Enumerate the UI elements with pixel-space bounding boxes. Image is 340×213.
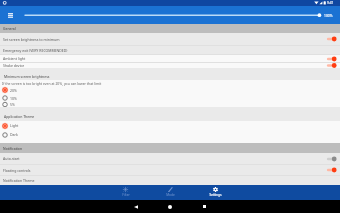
button[interactable]: Notification Theme [0,176,340,185]
button[interactable]: Mode [148,185,193,200]
staticText: If the screen is too bright even at 20%,… [2,81,102,86]
button[interactable]: Floating controls [0,165,340,175]
staticText: Shake device [3,63,25,68]
staticText: Filter [122,193,130,197]
staticText: Light [10,123,19,128]
button[interactable]: Back [119,200,153,213]
button[interactable]: Dark [0,130,340,139]
button[interactable]: 20% [0,86,340,94]
button[interactable]: Shake device [0,63,340,68]
staticText: Floating controls [3,168,31,173]
button[interactable]: 5% [0,102,340,107]
button[interactable]: Open navigation menu [4,9,16,21]
staticText: 9:41 [327,1,334,5]
button[interactable]: Recent apps [187,200,221,213]
staticText: Emergency exit (VERY RECOMMENDED) [3,48,68,53]
staticText: Dark [10,132,18,137]
button[interactable]: Brightness slider [25,10,322,20]
staticText: Settings [209,193,222,197]
button[interactable]: Emergency exit (VERY RECOMMENDED) [0,46,340,54]
button[interactable]: Auto-start [0,153,340,164]
button[interactable]: Filter [103,185,148,200]
button[interactable]: Light [0,121,340,130]
staticText: Mode [166,193,175,197]
staticText: Notification Theme [3,178,35,183]
staticText: 20% [10,88,17,93]
staticText: General [3,26,16,31]
staticText: Notification [3,146,23,151]
staticText: Minimum screen brightness [4,74,50,79]
staticText: Ambient light [3,56,26,61]
staticText: Application Theme [4,114,35,119]
button[interactable]: Settings [193,185,238,200]
staticText: 10% [10,96,17,101]
button[interactable]: Ambient light [0,55,340,62]
staticText: 5% [10,102,15,107]
staticText: Set screen brightness to minimum [3,37,60,42]
button[interactable]: Set screen brightness to minimum [0,33,340,45]
button[interactable]: Home [153,200,187,213]
button[interactable]: 10% [0,94,340,102]
staticText: Auto-start [3,156,20,161]
staticText: 100% [324,13,333,17]
